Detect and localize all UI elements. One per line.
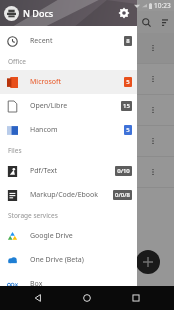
staticText: Recent [30,36,53,46]
button[interactable]: More options [148,105,158,115]
button[interactable]: Microsoft [0,70,137,94]
staticText: Markup/Code/Ebook [30,190,99,200]
button[interactable]: About [0,297,137,310]
button[interactable]: More options [0,157,174,187]
staticText: Office [8,57,27,66]
staticText: Hancom [30,125,58,135]
button[interactable]: Pdf/Text [0,159,137,183]
staticText: Storage services [8,211,58,220]
button[interactable]: More options [148,74,158,84]
button[interactable]: Home [76,287,98,309]
button[interactable]: Add [136,250,160,274]
button[interactable]: More options [0,95,174,125]
staticText: Files [8,146,22,155]
button[interactable]: Open/Libre [0,94,137,118]
staticText: Microsoft [30,77,62,87]
button[interactable]: Search [140,16,152,28]
button[interactable]: Settings [116,5,132,21]
staticText: 0/0/8 [115,191,130,199]
button[interactable]: Markup/Code/Ebook [0,183,137,207]
button[interactable]: Sort [162,16,168,28]
staticText: 5 [126,78,130,86]
button[interactable]: More options [0,64,174,94]
staticText: 0/10 [117,167,130,175]
button[interactable]: N Docs [0,0,137,26]
button[interactable]: One Drive (Beta) [0,248,137,272]
staticText: Open/Libre [30,101,68,111]
button[interactable]: Recents [125,287,147,309]
button[interactable]: More options [148,136,158,146]
button[interactable]: More options [148,167,158,177]
button[interactable]: More options [148,43,158,53]
staticText: 10:23 [154,1,171,10]
button[interactable]: Recent [0,29,137,53]
staticText: 5 [126,126,130,134]
staticText: Google Drive [30,231,73,241]
staticText: Pdf/Text [30,166,57,176]
staticText: About [30,299,50,309]
button[interactable]: More options [0,33,174,63]
staticText: 8 [126,37,130,45]
staticText: 15 [123,102,130,110]
button[interactable]: Google Drive [0,224,137,248]
staticText: N Docs [23,7,54,19]
button[interactable]: Hancom [0,118,137,142]
staticText: One Drive (Beta) [30,255,84,265]
button[interactable]: Back [27,287,49,309]
button[interactable]: Box [0,272,137,296]
button[interactable]: More options [0,126,174,156]
staticText: Box [30,279,43,289]
